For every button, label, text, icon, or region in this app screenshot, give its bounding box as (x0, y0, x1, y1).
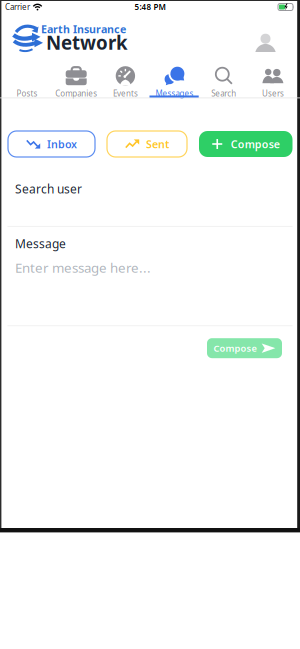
staticText: Events (113, 88, 138, 99)
staticText: Search (211, 88, 236, 99)
button[interactable]: Profile (255, 33, 276, 52)
staticText: Search user (15, 181, 82, 197)
staticText: Network (46, 30, 128, 55)
staticText: Compose (231, 137, 280, 151)
button[interactable]: Events (101, 62, 150, 98)
button[interactable]: Posts (2, 62, 52, 98)
button[interactable]: Earth Insurance (12, 25, 142, 55)
staticText: Earth Insurance (41, 22, 126, 36)
button[interactable]: Users (248, 62, 298, 98)
staticText: Carrier (5, 2, 30, 12)
staticText: Enter message here... (15, 259, 151, 276)
button[interactable]: Messages (150, 62, 199, 98)
staticText: Inbox (47, 137, 77, 151)
button[interactable]: Inbox (8, 131, 95, 157)
button[interactable]: Sent (107, 131, 187, 157)
button[interactable]: Compose (207, 338, 282, 358)
staticText: Posts (16, 88, 37, 99)
staticText: Sent (146, 137, 169, 151)
button[interactable]: Compose (199, 131, 292, 157)
staticText: Messages (156, 88, 194, 99)
button[interactable]: Search (199, 62, 248, 98)
staticText: Compose (213, 342, 256, 354)
staticText: Message (15, 236, 66, 252)
staticText: 5:48 PM (134, 2, 165, 12)
button[interactable]: Companies (52, 62, 101, 98)
staticText: Users (262, 88, 284, 99)
staticText: Companies (55, 88, 97, 99)
